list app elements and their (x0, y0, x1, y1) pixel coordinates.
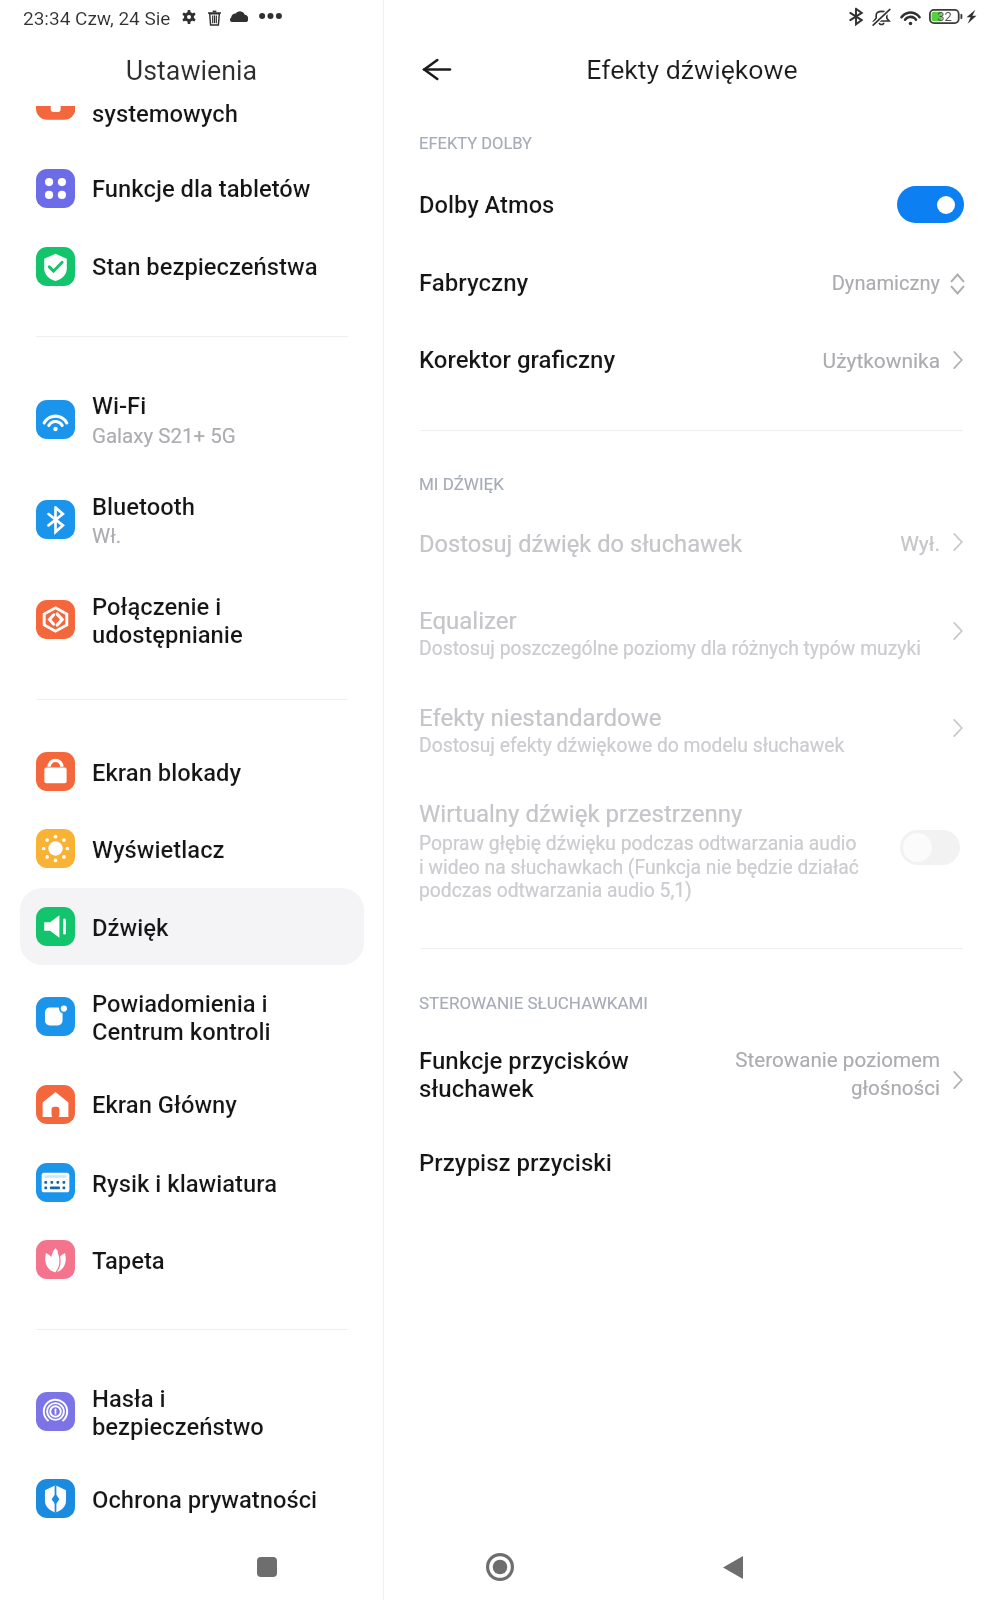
staticText: Galaxy S21+ 5G (92, 424, 236, 448)
staticText: Funkcje dla tabletów (92, 175, 311, 203)
staticText: systemowych (92, 100, 238, 128)
button[interactable]: Dolby Atmos (390, 172, 1000, 250)
button[interactable]: Wi-Fi (20, 380, 364, 457)
staticText: Dostosuj efekty dźwiękowe do modelu słuc… (419, 734, 845, 757)
staticText: Fabryczny (419, 269, 529, 297)
button[interactable]: Korektor graficzny (390, 328, 1000, 406)
staticText: Wi-Fi (92, 392, 147, 420)
staticText: Dolby Atmos (419, 191, 555, 219)
button[interactable]: Ekran Główny (20, 1066, 364, 1143)
staticText: 23:34 Czw, 24 Sie (23, 7, 171, 29)
button[interactable]: Ochrona prywatności (20, 1460, 364, 1537)
staticText: Stan bezpieczeństwa (92, 253, 318, 281)
staticText: Efekty dźwiękowe (384, 54, 1000, 85)
button[interactable]: Ekran blokady (20, 733, 364, 810)
button[interactable]: systemowych (20, 83, 364, 160)
button[interactable]: Bluetooth (20, 481, 364, 558)
button[interactable]: Funkcje dla tabletów (20, 150, 364, 227)
staticText: Dostosuj dźwięk do słuchawek (419, 530, 743, 558)
button[interactable]: Połączenie i udostępnianie (20, 581, 364, 658)
staticText: STEROWANIE SŁUCHAWKAMI (419, 993, 648, 1013)
staticText: Korektor graficzny (419, 346, 616, 374)
staticText: Wirtualny dźwięk przestrzenny (419, 800, 743, 828)
staticText: Wył. (520, 532, 940, 557)
button[interactable]: Dolby Atmos toggle (897, 186, 964, 223)
staticText: EFEKTY DOLBY (419, 134, 533, 153)
button[interactable]: Efekty niestandardowe (390, 687, 1000, 759)
staticText: Ekran Główny (92, 1091, 238, 1119)
staticText: 32 (929, 9, 960, 24)
staticText: Dynamiczny (520, 271, 940, 295)
staticText: Bluetooth (92, 493, 195, 521)
staticText: MI DŹWIĘK (419, 474, 504, 494)
button[interactable]: Equalizer (390, 590, 1000, 662)
staticText: Dostosuj poszczególne poziomy dla różnyc… (419, 637, 921, 660)
staticText: Ekran blokady (92, 759, 242, 787)
staticText: Rysik i klawiatura (92, 1170, 278, 1198)
button[interactable]: Virtual surround sound toggle (900, 830, 960, 865)
button[interactable]: Stan bezpieczeństwa (20, 227, 364, 304)
staticText: Dźwięk (92, 914, 169, 942)
button[interactable]: Recents (241, 1541, 293, 1593)
staticText: Wł. (92, 524, 122, 548)
staticText: Hasła i bezpieczeństwo (92, 1385, 264, 1441)
staticText: Użytkownika (520, 349, 940, 373)
button[interactable]: Powiadomienia i Centrum kontroli (20, 978, 364, 1055)
staticText: Sterowanie poziomem głośności (700, 1048, 940, 1100)
button[interactable]: Back (410, 43, 463, 96)
staticText: Powiadomienia i Centrum kontroli (92, 990, 271, 1046)
button[interactable]: Dźwięk (20, 888, 364, 965)
button[interactable]: Back (707, 1541, 759, 1593)
staticText: Equalizer (419, 607, 517, 635)
staticText: Przypisz przyciski (419, 1149, 612, 1177)
staticText: Ustawienia (0, 55, 383, 86)
button[interactable]: Hasła i bezpieczeństwo (20, 1373, 364, 1450)
staticText: Ochrona prywatności (92, 1486, 318, 1514)
button[interactable]: Fabryczny (390, 250, 1000, 328)
button[interactable]: Rysik i klawiatura (20, 1144, 364, 1221)
staticText: Efekty niestandardowe (419, 704, 662, 732)
button[interactable]: Tapeta (20, 1221, 364, 1298)
staticText: Funkcje przycisków słuchawek (419, 1047, 629, 1103)
staticText: Tapeta (92, 1247, 165, 1275)
button[interactable]: Home (474, 1541, 526, 1593)
button[interactable]: Funkcje przycisków słuchawek (390, 1034, 1000, 1126)
staticText: Popraw głębię dźwięku podczas odtwarzani… (419, 832, 859, 901)
button[interactable]: Przypisz przyciski (390, 1130, 1000, 1202)
button[interactable]: Dostosuj dźwięk do słuchawek (390, 513, 1000, 577)
staticText: Wyświetlacz (92, 836, 225, 864)
button[interactable]: Wirtualny dźwięk przestrzenny (390, 784, 1000, 910)
button[interactable]: Wyświetlacz (20, 810, 364, 887)
staticText: Połączenie i udostępnianie (92, 593, 243, 649)
